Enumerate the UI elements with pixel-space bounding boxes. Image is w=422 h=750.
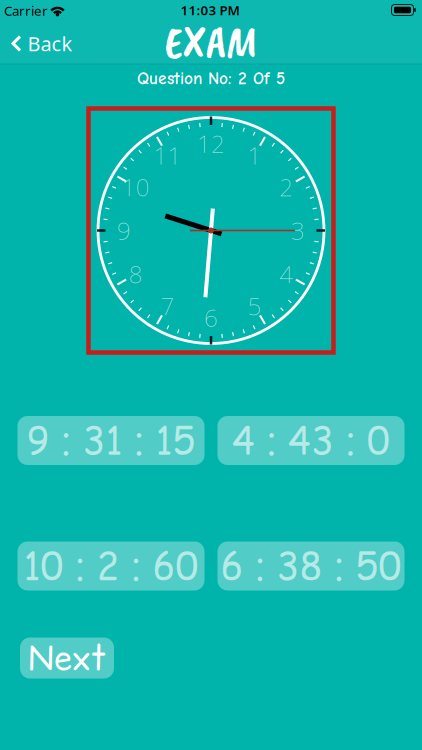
button[interactable]: 4 : 43 : 0 [217,416,404,465]
staticText: 4 [279,258,293,290]
staticText: Carrier [4,2,48,19]
staticText: 6 [204,302,218,333]
staticText: 4 : 43 : 0 [232,414,390,467]
staticText: 10 [122,171,150,203]
staticText: Question No: 2 Of 5 [137,68,285,88]
staticText: 7 [160,290,174,322]
staticText: 8 [129,258,143,290]
staticText: 9 [117,215,131,246]
button[interactable]: 10 : 2 : 60 [17,541,204,590]
staticText: 2 [279,171,293,203]
staticText: 6 : 38 : 50 [220,540,401,592]
staticText: 12 [197,128,225,159]
staticText: 11:03 PM [180,1,239,19]
staticText: 1 [247,139,261,171]
staticText: 3 [291,215,305,246]
staticText: 5 [247,290,261,322]
staticText: 9 : 31 : 15 [26,414,195,467]
staticText: 10 : 2 : 60 [23,540,198,592]
staticText: 11 [153,139,181,171]
button[interactable]: 9 : 31 : 15 [17,416,204,465]
button[interactable]: Next [20,637,114,678]
button[interactable]: Back [0,23,80,63]
staticText: Back [27,30,72,57]
button[interactable]: 6 : 38 : 50 [217,541,404,590]
staticText: Next [28,636,106,680]
staticText: EXAM [164,13,257,70]
